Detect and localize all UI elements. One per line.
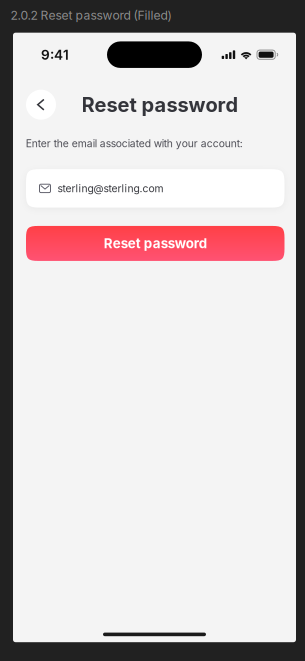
staticText: Enter the email associated with your acc… bbox=[26, 137, 243, 150]
staticText: Reset password bbox=[104, 235, 207, 251]
staticText: sterling@sterling.com bbox=[57, 182, 163, 195]
button[interactable]: Reset password bbox=[26, 226, 284, 261]
staticText: Reset password bbox=[81, 93, 238, 117]
staticText: 2.0.2 Reset password (Filled) bbox=[10, 8, 171, 23]
staticText: 9:41 bbox=[41, 46, 69, 63]
button[interactable]: Back bbox=[26, 90, 56, 120]
